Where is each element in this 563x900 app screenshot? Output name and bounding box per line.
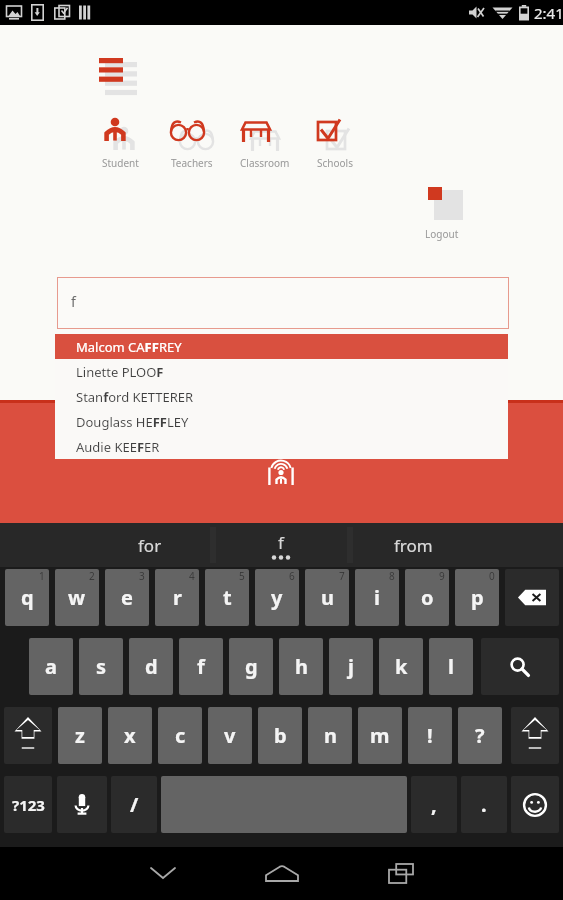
staticText: ,	[431, 791, 437, 818]
button[interactable]: b	[258, 707, 302, 764]
button[interactable]: Audie KEEFER	[55, 434, 508, 459]
button[interactable]: Douglass HEFFLEY	[55, 409, 508, 434]
button[interactable]: back	[505, 569, 559, 626]
button[interactable]: ?123	[4, 776, 52, 833]
button[interactable]: p	[455, 569, 499, 626]
button[interactable]: Teachers	[152, 112, 232, 170]
button[interactable]: j	[329, 638, 373, 695]
staticText: Stanford KETTERER	[76, 388, 194, 406]
staticText: g	[245, 653, 258, 680]
staticText: a	[45, 653, 57, 680]
button[interactable]: d	[129, 638, 173, 695]
button[interactable]: emoji	[511, 776, 559, 833]
staticText: Malcom CAFFREY	[76, 338, 182, 356]
button[interactable]: /	[111, 776, 157, 833]
staticText: e	[121, 584, 133, 611]
staticText: Douglass HEFFLEY	[76, 413, 189, 431]
button[interactable]: Menu	[96, 54, 142, 94]
staticText: 2:41	[534, 3, 563, 23]
staticText: 0	[489, 569, 495, 583]
staticText: p	[471, 584, 484, 611]
staticText: j	[348, 653, 354, 680]
button[interactable]: for	[85, 523, 215, 567]
staticText: d	[145, 653, 158, 680]
button[interactable]: .	[461, 776, 507, 833]
staticText: u	[321, 584, 334, 611]
button[interactable]: Student	[80, 112, 160, 170]
staticText: Classroom	[240, 156, 290, 170]
staticText: Teachers	[171, 156, 213, 170]
staticText: r	[173, 584, 182, 611]
button[interactable]: search	[481, 638, 559, 695]
button[interactable]: Broadcast	[266, 459, 296, 489]
button[interactable]: Home	[252, 854, 312, 892]
button[interactable]: l	[429, 638, 473, 695]
button[interactable]: f	[179, 638, 223, 695]
button[interactable]: n	[308, 707, 352, 764]
staticText: 1	[39, 569, 45, 583]
button[interactable]: Back	[133, 854, 193, 892]
button[interactable]: t	[205, 569, 249, 626]
button[interactable]: Recents	[371, 854, 431, 892]
staticText: /	[130, 791, 139, 818]
staticText: ?	[475, 722, 485, 749]
button[interactable]: y	[255, 569, 299, 626]
button[interactable]: from	[348, 523, 478, 567]
staticText: ?123	[12, 795, 45, 815]
staticText: n	[324, 722, 337, 749]
button[interactable]: f	[216, 523, 346, 567]
staticText: Logout	[425, 227, 459, 241]
button[interactable]: g	[229, 638, 273, 695]
staticText: 4	[189, 569, 195, 583]
staticText: f	[278, 531, 284, 554]
button[interactable]: m	[358, 707, 402, 764]
button[interactable]: Classroom	[225, 112, 305, 170]
button[interactable]: ,	[411, 776, 457, 833]
button[interactable]: u	[305, 569, 349, 626]
button[interactable]: ?	[458, 707, 502, 764]
button[interactable]: z	[58, 707, 102, 764]
button[interactable]: v	[208, 707, 252, 764]
staticText: m	[370, 722, 390, 749]
staticText: Schools	[317, 156, 353, 170]
staticText: v	[224, 722, 236, 749]
button[interactable]: shift	[511, 707, 559, 764]
button[interactable]: i	[355, 569, 399, 626]
button[interactable]: h	[279, 638, 323, 695]
button[interactable]: a	[29, 638, 73, 695]
button[interactable]: x	[108, 707, 152, 764]
button[interactable]: w	[55, 569, 99, 626]
staticText: c	[175, 722, 186, 749]
staticText: .	[481, 791, 487, 818]
button[interactable]: s	[79, 638, 123, 695]
staticText: l	[448, 653, 454, 680]
button[interactable]: o	[405, 569, 449, 626]
staticText: 6	[289, 569, 295, 583]
button[interactable]: Linette PLOOF	[55, 359, 508, 384]
staticText: x	[124, 722, 136, 749]
button[interactable]: c	[158, 707, 202, 764]
staticText: Student	[102, 156, 139, 170]
staticText: h	[295, 653, 308, 680]
button[interactable]: Malcom CAFFREY	[55, 334, 508, 359]
button[interactable]: k	[379, 638, 423, 695]
staticText: Audie KEEFER	[76, 438, 160, 456]
staticText: f	[197, 653, 205, 680]
button[interactable]: e	[105, 569, 149, 626]
staticText: y	[271, 584, 283, 611]
staticText: for	[138, 534, 162, 557]
staticText: b	[274, 722, 287, 749]
staticText: Linette PLOOF	[76, 363, 164, 381]
button[interactable]: Logout	[402, 183, 482, 241]
button[interactable]: shift	[4, 707, 52, 764]
button[interactable]: Stanford KETTERER	[55, 384, 508, 409]
button[interactable]: mic	[57, 776, 107, 833]
button[interactable]: q	[5, 569, 49, 626]
staticText: k	[395, 653, 408, 680]
button[interactable]: f	[57, 277, 509, 329]
button[interactable]: Schools	[295, 112, 375, 170]
button[interactable]: r	[155, 569, 199, 626]
staticText: 2	[89, 569, 95, 583]
button[interactable]: !	[408, 707, 452, 764]
